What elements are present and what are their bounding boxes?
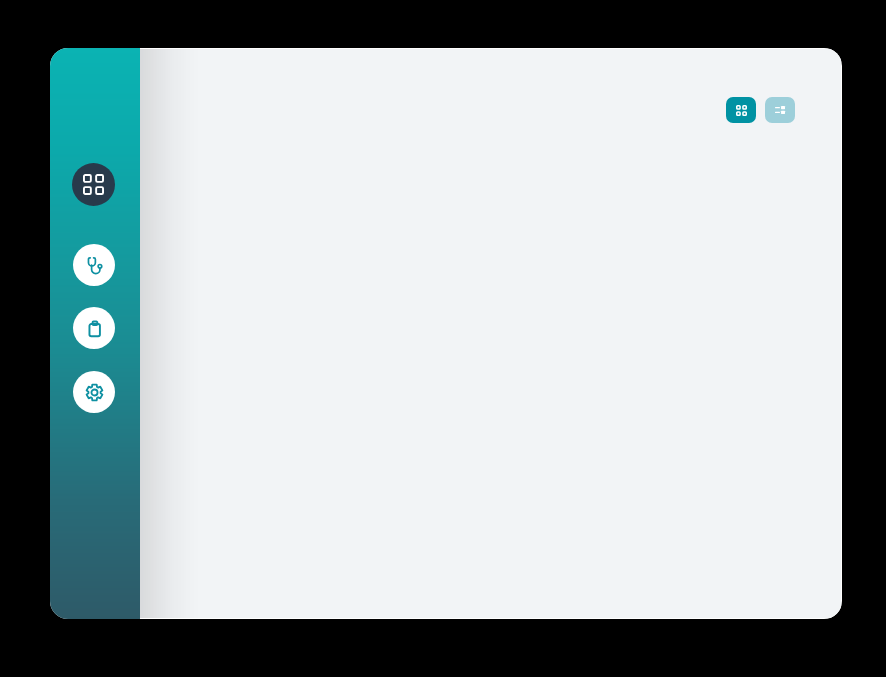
button[interactable]: Consultations	[73, 244, 115, 286]
button[interactable]: List view	[765, 97, 795, 123]
button[interactable]: Grid view	[726, 97, 756, 123]
button[interactable]: Dashboard	[72, 163, 115, 206]
button[interactable]: Settings	[73, 371, 115, 413]
button[interactable]: Records	[73, 307, 115, 349]
